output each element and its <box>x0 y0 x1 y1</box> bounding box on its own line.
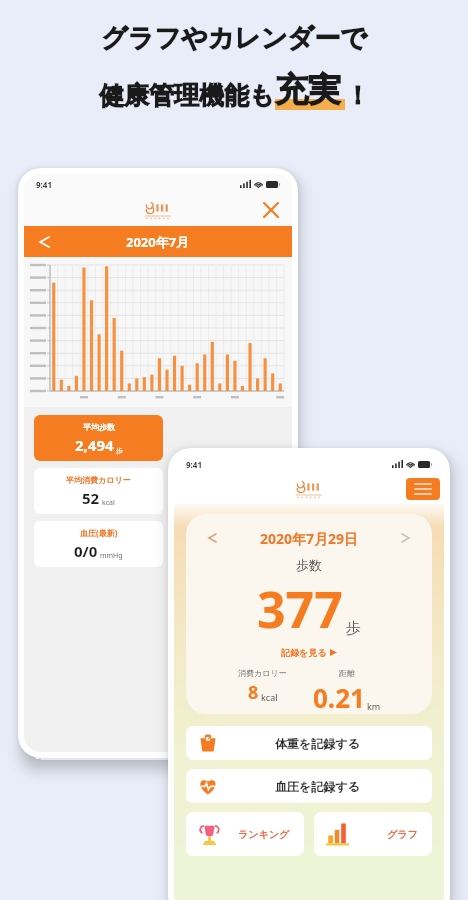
staticText: 9:41 <box>186 459 202 470</box>
staticText: グラフ <box>387 828 418 841</box>
staticText: 平均歩数 <box>83 422 115 432</box>
button[interactable]: 記録を見る <box>281 647 337 658</box>
button[interactable]: 平均歩数 <box>34 415 163 461</box>
staticText: 記録を見る <box>281 647 327 658</box>
staticText: 0/0 <box>74 541 98 561</box>
staticText: グラフやカレンダーで <box>101 22 367 55</box>
button[interactable]: Close <box>260 199 282 221</box>
staticText: 健康管理機能も <box>99 80 275 111</box>
staticText: 距離 <box>339 668 355 678</box>
staticText: kcal <box>102 498 115 508</box>
button[interactable]: グラフ <box>314 812 432 856</box>
staticText: 血圧(最新) <box>80 527 118 538</box>
button[interactable]: Menu <box>406 478 440 500</box>
button[interactable]: Previous day <box>202 528 222 548</box>
staticText: km <box>367 700 381 712</box>
staticText: 歩数 <box>296 557 322 573</box>
staticText: 血圧を記録する <box>275 779 360 794</box>
staticText: 8 <box>248 680 259 705</box>
button[interactable]: 血圧(最新) <box>34 521 163 567</box>
staticText: kcal <box>261 691 278 703</box>
button[interactable]: 2020年7月29日 <box>186 514 432 714</box>
staticText: 充実 <box>275 69 341 111</box>
staticText: 2020年7月29日 <box>260 529 359 548</box>
staticText: 歩 <box>346 619 361 638</box>
staticText: 52 <box>82 488 100 508</box>
staticText: ！ <box>345 80 370 111</box>
staticText: 体重を記録する <box>275 736 360 751</box>
staticText: 377 <box>257 575 343 643</box>
button[interactable]: Next day <box>396 528 416 548</box>
button[interactable]: 体重を記録する <box>186 726 432 760</box>
staticText: 9:41 <box>36 179 52 190</box>
staticText: 消費カロリー <box>238 668 287 678</box>
button[interactable]: ランキング <box>186 812 304 856</box>
staticText: 歩 <box>116 446 123 455</box>
staticText: 平均消費カロリー <box>66 475 131 485</box>
button[interactable]: 平均消費カロリー <box>34 468 163 514</box>
staticText: mmHg <box>100 551 123 561</box>
button[interactable]: 血圧を記録する <box>186 769 432 803</box>
staticText: 2,494 <box>75 435 114 455</box>
staticText: 2020年7月 <box>126 233 190 251</box>
staticText: ランキング <box>238 828 290 841</box>
staticText: 0.21 <box>313 680 365 714</box>
button[interactable]: Previous month <box>32 230 56 254</box>
